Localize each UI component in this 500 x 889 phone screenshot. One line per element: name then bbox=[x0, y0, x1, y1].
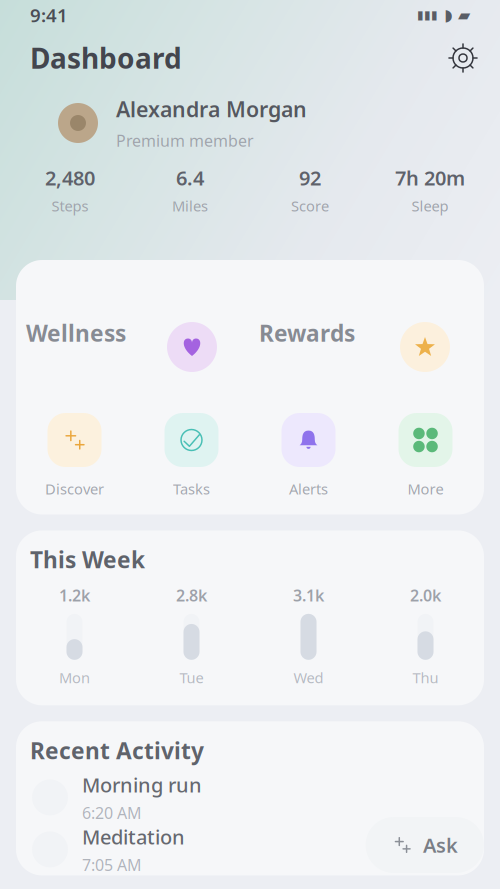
staticText: Tue bbox=[179, 668, 203, 687]
staticText: Morning run bbox=[82, 771, 202, 798]
button[interactable]: Tasks bbox=[133, 413, 250, 498]
button[interactable]: 7h 20m bbox=[370, 164, 490, 215]
button[interactable]: 1.2k bbox=[16, 585, 133, 687]
staticText: More bbox=[407, 479, 443, 498]
staticText: ◗ bbox=[444, 6, 452, 24]
staticText: 3.1k bbox=[293, 585, 324, 606]
button[interactable]: Wellness bbox=[22, 318, 245, 382]
staticText: Score bbox=[291, 196, 329, 215]
staticText: 9:41 bbox=[30, 3, 68, 27]
staticText: Sleep bbox=[411, 196, 448, 215]
staticText: Thu bbox=[412, 668, 438, 687]
button[interactable]: 2.0k bbox=[367, 585, 484, 687]
button[interactable]: Morning run bbox=[16, 771, 484, 823]
button[interactable]: 92 bbox=[250, 164, 370, 215]
staticText: Alexandra Morgan bbox=[116, 95, 307, 123]
button[interactable]: Ask assistant bbox=[366, 817, 484, 873]
staticText: Tasks bbox=[173, 479, 210, 498]
staticText: Miles bbox=[172, 196, 208, 215]
button[interactable]: 2,480 bbox=[10, 164, 130, 215]
staticText: Alerts bbox=[289, 479, 328, 498]
button[interactable]: 3.1k bbox=[250, 585, 367, 687]
staticText: 1.2k bbox=[59, 585, 90, 606]
staticText: 2.8k bbox=[176, 585, 207, 606]
staticText: Dashboard bbox=[30, 39, 182, 77]
button[interactable]: Meditation bbox=[16, 823, 484, 875]
staticText: Recent Activity bbox=[30, 735, 204, 765]
staticText: Discover bbox=[45, 479, 104, 498]
staticText: Mon bbox=[59, 668, 90, 687]
button[interactable]: Alexandra Morgan bbox=[0, 86, 500, 160]
staticText: Meditation bbox=[82, 823, 185, 850]
button[interactable]: 2.8k bbox=[133, 585, 250, 687]
button[interactable]: Alerts bbox=[250, 413, 367, 498]
button[interactable]: Rewards bbox=[255, 318, 478, 382]
staticText: 2,480 bbox=[45, 164, 95, 191]
button[interactable]: More bbox=[367, 413, 484, 498]
staticText: ▮▮▮ bbox=[417, 8, 438, 22]
staticText: 2.0k bbox=[410, 585, 441, 606]
staticText: Ask bbox=[423, 832, 458, 858]
staticText: This Week bbox=[30, 544, 145, 575]
staticText: 7h 20m bbox=[395, 164, 465, 191]
staticText: 92 bbox=[299, 164, 321, 191]
staticText: 6.4 bbox=[176, 164, 204, 191]
staticText: 6:20 AM bbox=[82, 802, 142, 823]
staticText: Wed bbox=[293, 668, 323, 687]
button[interactable]: Settings bbox=[443, 38, 483, 78]
staticText: Wellness bbox=[26, 318, 126, 348]
staticText: Steps bbox=[51, 196, 88, 215]
button[interactable]: 6.4 bbox=[130, 164, 250, 215]
button[interactable]: Discover bbox=[16, 413, 133, 498]
staticText: ▰ bbox=[458, 6, 470, 24]
staticText: Rewards bbox=[259, 318, 355, 348]
staticText: Premium member bbox=[116, 130, 254, 151]
staticText: 7:05 AM bbox=[82, 854, 142, 875]
